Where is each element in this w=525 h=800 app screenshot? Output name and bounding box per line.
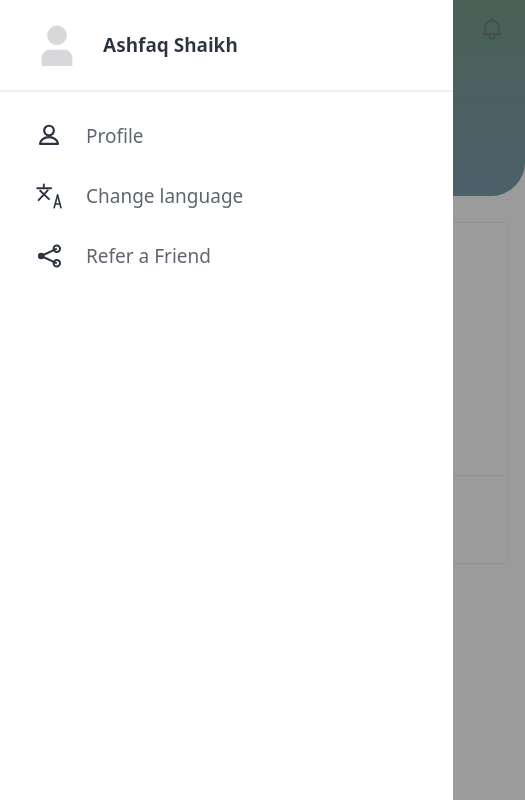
staticText: 2022 bbox=[26, 125, 88, 162]
button[interactable]: Notifications bbox=[473, 10, 511, 48]
staticText: Refer a Friend bbox=[86, 243, 211, 269]
button[interactable]: Learn More In bbox=[24, 222, 509, 564]
button[interactable]: Profile bbox=[0, 106, 453, 166]
button[interactable]: Ashfaq Shaikh bbox=[0, 0, 453, 90]
staticText: Ashfaq Shaikh bbox=[103, 32, 238, 58]
button[interactable]: Change language bbox=[0, 166, 453, 226]
button[interactable]: Refer a Friend bbox=[0, 226, 453, 286]
staticText: Change language bbox=[86, 183, 244, 209]
staticText: Profile bbox=[86, 123, 144, 149]
